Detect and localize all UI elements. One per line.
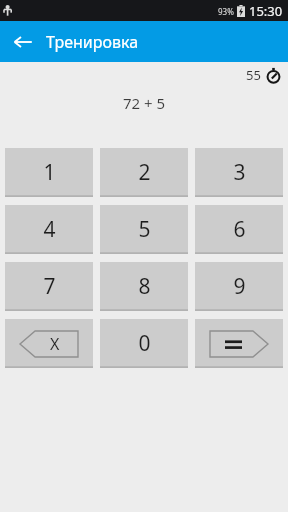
button[interactable]: 4: [5, 205, 93, 254]
staticText: 8: [138, 272, 151, 301]
button[interactable]: 9: [195, 262, 283, 311]
button[interactable]: Equals: [195, 319, 283, 368]
button[interactable]: 6: [195, 205, 283, 254]
staticText: 55: [246, 66, 261, 84]
button[interactable]: 5: [100, 205, 188, 254]
button[interactable]: 3: [195, 148, 283, 197]
button[interactable]: 0: [100, 319, 188, 368]
staticText: 5: [138, 215, 151, 244]
other: Stopwatch: [265, 67, 282, 84]
staticText: 0: [138, 329, 151, 358]
staticText: Тренировка: [46, 31, 139, 53]
button[interactable]: Backspace: [5, 319, 93, 368]
button[interactable]: 7: [5, 262, 93, 311]
staticText: 93%: [218, 6, 234, 17]
staticText: 9: [233, 272, 246, 301]
button[interactable]: 1: [5, 148, 93, 197]
button[interactable]: 8: [100, 262, 188, 311]
staticText: 15:30: [249, 2, 283, 20]
other: USB connected: [1, 4, 13, 17]
button[interactable]: 2: [100, 148, 188, 197]
staticText: 4: [43, 215, 56, 244]
staticText: 72 + 5: [123, 93, 166, 113]
staticText: X: [50, 333, 60, 355]
staticText: 6: [233, 215, 246, 244]
button[interactable]: Back: [0, 21, 46, 62]
staticText: 2: [138, 158, 151, 187]
staticText: 3: [233, 158, 246, 187]
staticText: 7: [43, 272, 56, 301]
staticText: 1: [43, 158, 56, 187]
